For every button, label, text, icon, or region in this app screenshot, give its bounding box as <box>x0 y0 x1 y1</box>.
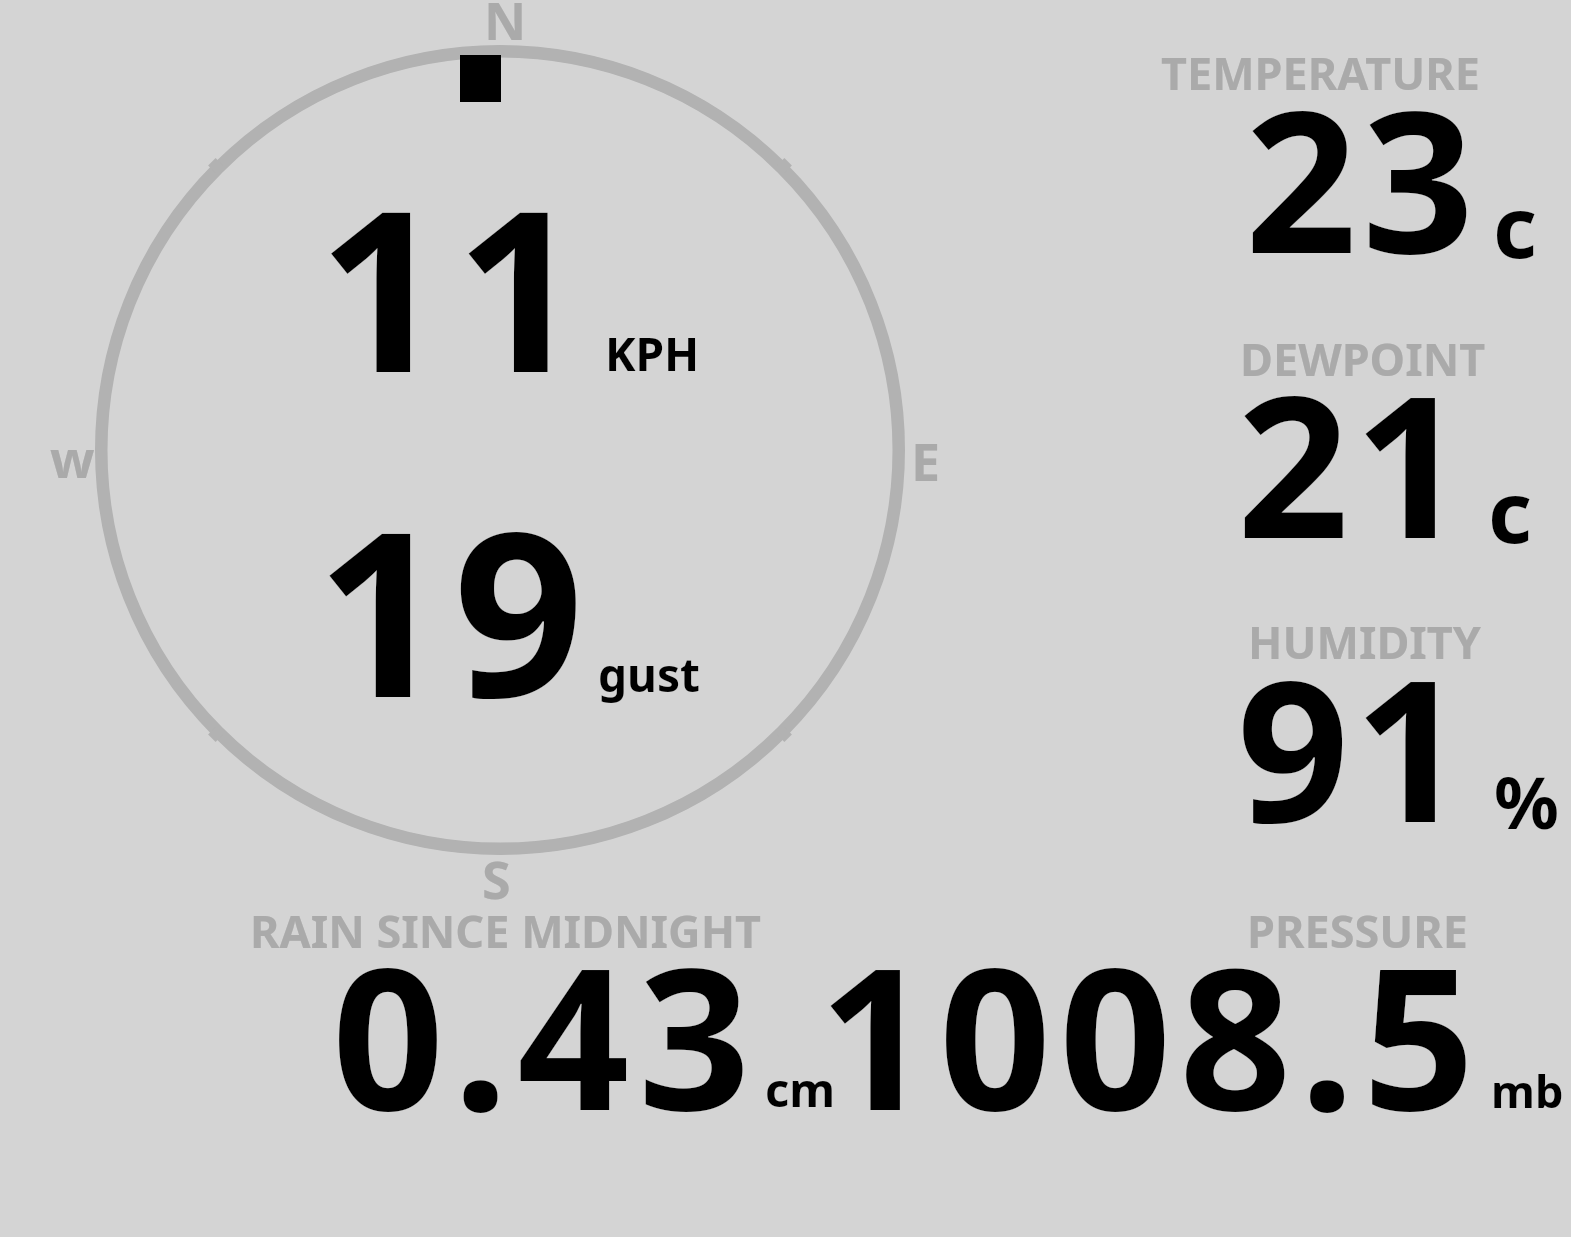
staticText: w <box>50 422 95 493</box>
staticText: 11 <box>318 134 594 438</box>
button[interactable]: Temperature 23 celsius <box>1100 20 1571 290</box>
button[interactable]: Rain since midnight 0.43 cm <box>220 885 840 1125</box>
staticText: RAIN SINCE MIDNIGHT <box>250 900 762 961</box>
staticText: 1008.5 <box>819 900 1483 1167</box>
staticText: DEWPOINT <box>1240 328 1486 389</box>
staticText: mb <box>1491 1060 1564 1121</box>
button[interactable]: Humidity 91 percent <box>1100 590 1571 860</box>
staticText: % <box>1494 752 1559 850</box>
staticText: 21 <box>1237 328 1472 595</box>
button[interactable]: Dewpoint 21 celsius <box>1100 305 1571 575</box>
button[interactable]: Pressure 1008.5 millibar <box>845 885 1571 1125</box>
staticText: S <box>482 843 511 914</box>
staticText: 19 <box>316 453 591 764</box>
staticText: cm <box>765 1057 836 1121</box>
staticText: 23 <box>1245 43 1480 310</box>
staticText: 91 <box>1237 612 1472 879</box>
staticText: N <box>484 0 527 55</box>
staticText: HUMIDITY <box>1248 611 1481 672</box>
staticText: TEMPERATURE <box>1161 42 1480 103</box>
staticText: c <box>1488 452 1532 568</box>
staticText: 0.43 <box>332 900 760 1167</box>
staticText: PRESSURE <box>1247 900 1468 961</box>
staticText: E <box>911 425 941 496</box>
staticText: gust <box>598 643 701 706</box>
button[interactable]: Wind direction compass <box>60 0 940 900</box>
staticText: KPH <box>605 322 700 385</box>
staticText: c <box>1493 167 1537 283</box>
